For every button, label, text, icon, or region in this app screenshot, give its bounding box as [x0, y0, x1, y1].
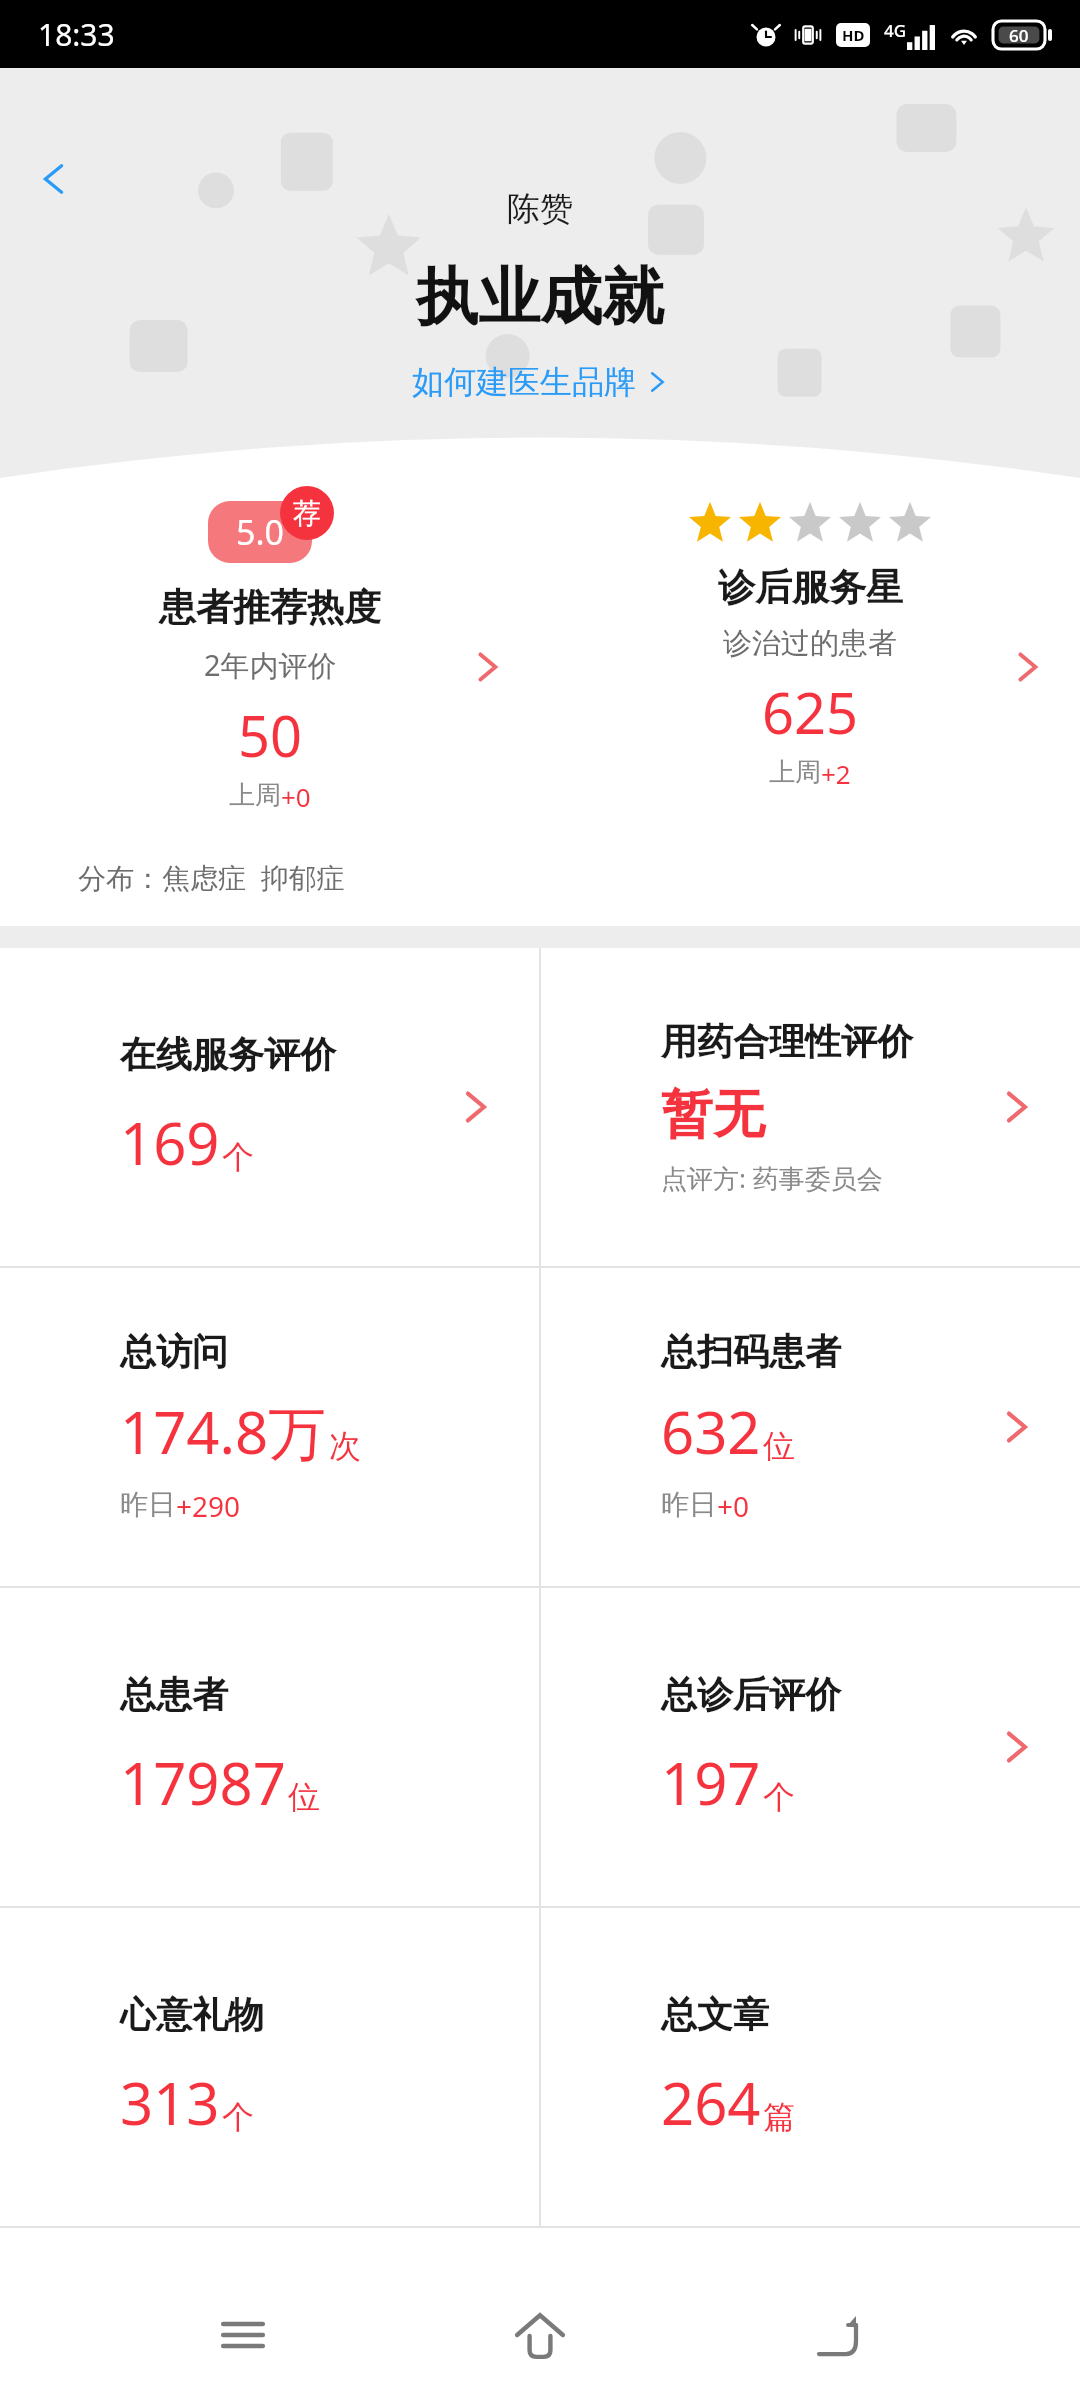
staticText: +0 — [717, 1487, 750, 1525]
button[interactable]: 总访问 — [0, 1268, 539, 1586]
staticText: 313 — [120, 2063, 220, 2142]
button[interactable]: 总诊后评价 — [541, 1588, 1080, 1906]
staticText: 总患者 — [120, 1672, 228, 1717]
staticText: 个 — [222, 1137, 254, 1177]
staticText: +2 — [821, 756, 851, 791]
staticText: 个 — [763, 1777, 795, 1817]
staticText: HD — [842, 25, 865, 45]
staticText: 昨日 — [120, 1487, 176, 1522]
button[interactable]: Back — [783, 2280, 893, 2390]
staticText: 执业成就 — [416, 258, 664, 336]
staticText: 总扫码患者 — [661, 1329, 841, 1374]
staticText: +290 — [176, 1487, 241, 1525]
staticText: 总诊后评价 — [661, 1672, 841, 1717]
staticText: 诊治过的患者 — [723, 625, 897, 662]
button[interactable]: Home — [485, 2280, 595, 2390]
button[interactable]: 心意礼物 — [0, 1908, 539, 2226]
staticText: 总访问 — [120, 1329, 228, 1374]
button[interactable]: 总患者 — [0, 1588, 539, 1906]
staticText: 18:33 — [38, 14, 115, 55]
staticText: 陈赞 — [507, 188, 573, 230]
button[interactable]: Back — [22, 146, 88, 212]
staticText: 位 — [763, 1426, 795, 1466]
staticText: 总文章 — [661, 1992, 769, 2037]
staticText: 在线服务评价 — [120, 1032, 336, 1077]
staticText: 分布：焦虑症 抑郁症 — [78, 858, 345, 896]
staticText: 位 — [288, 1777, 320, 1817]
staticText: 昨日 — [661, 1487, 717, 1522]
staticText: 2年内评价 — [204, 645, 337, 685]
staticText: 632 — [661, 1392, 761, 1471]
staticText: 篇 — [763, 2097, 795, 2137]
staticText: 心意礼物 — [120, 1992, 264, 2037]
staticText: 50 — [238, 697, 303, 773]
staticText: 暂无 — [661, 1082, 765, 1148]
button[interactable]: 总扫码患者 — [541, 1268, 1080, 1586]
staticText: 如何建医生品牌 — [412, 362, 636, 402]
staticText: 上周 — [229, 779, 281, 812]
staticText: 625 — [762, 674, 859, 750]
button[interactable]: Recent apps — [188, 2280, 298, 2390]
staticText: 用药合理性评价 — [661, 1019, 913, 1064]
staticText: 4G — [884, 19, 907, 42]
staticText: 5.0 — [236, 509, 285, 555]
button[interactable]: 诊后服务星 — [540, 428, 1080, 926]
staticText: 169 — [120, 1103, 220, 1182]
staticText: 诊后服务星 — [718, 564, 903, 611]
button[interactable]: 如何建医生品牌 — [402, 358, 678, 406]
staticText: 174.8万 — [120, 1392, 327, 1471]
staticText: 点评方: 药事委员会 — [661, 1160, 883, 1196]
staticText: 次 — [329, 1426, 361, 1466]
staticText: 17987 — [120, 1743, 286, 1822]
staticText: 患者推荐热度 — [159, 584, 381, 631]
staticText: 个 — [222, 2097, 254, 2137]
button[interactable]: 用药合理性评价 — [541, 948, 1080, 1266]
button[interactable]: 总文章 — [541, 1908, 1080, 2226]
button[interactable]: 在线服务评价 — [0, 948, 539, 1266]
staticText: 264 — [661, 2063, 761, 2142]
staticText: +0 — [281, 779, 311, 814]
staticText: 荐 — [293, 496, 321, 531]
staticText: 197 — [661, 1743, 761, 1822]
staticText: 上周 — [769, 756, 821, 789]
button[interactable]: 5.0 — [0, 428, 540, 926]
staticText: 60 — [1009, 24, 1029, 47]
